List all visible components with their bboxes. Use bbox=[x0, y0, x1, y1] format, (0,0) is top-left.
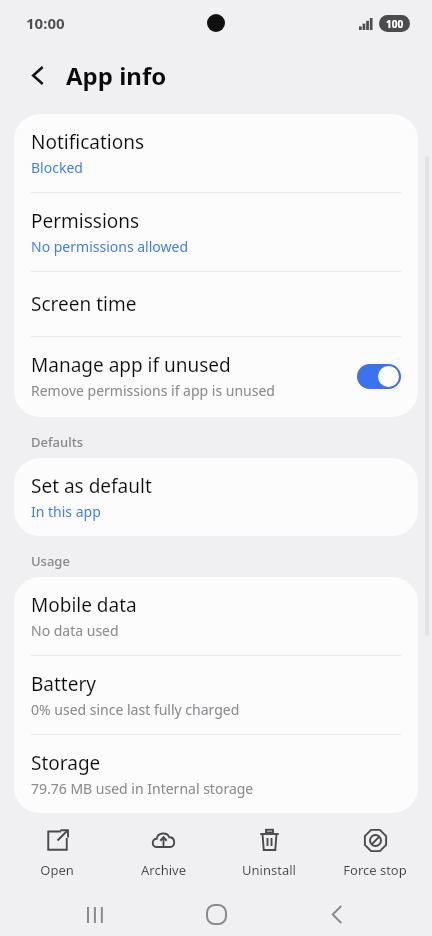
button[interactable]: Manage app if unused bbox=[14, 337, 418, 417]
staticText: Manage app if unused bbox=[31, 352, 231, 378]
staticText: Defaults bbox=[31, 433, 84, 451]
staticText: No data used bbox=[31, 621, 119, 640]
staticText: No permissions allowed bbox=[31, 237, 189, 256]
staticText: Permissions bbox=[31, 208, 140, 234]
staticText: Storage bbox=[31, 750, 101, 776]
staticText: Archive bbox=[141, 861, 186, 879]
button[interactable]: Archive bbox=[114, 824, 212, 883]
staticText: Screen time bbox=[31, 291, 137, 317]
button[interactable]: Back bbox=[20, 57, 56, 93]
staticText: Uninstall bbox=[242, 861, 296, 879]
button[interactable]: Open bbox=[8, 824, 106, 883]
button[interactable]: Permissions bbox=[14, 193, 418, 271]
staticText: Remove permissions if app is unused bbox=[31, 381, 275, 400]
staticText: 10:00 bbox=[26, 13, 65, 33]
button[interactable]: Battery bbox=[14, 656, 418, 734]
staticText: Notifications bbox=[31, 129, 145, 155]
staticText: 100 bbox=[386, 17, 404, 31]
staticText: Open bbox=[40, 861, 74, 879]
button[interactable]: Screen time bbox=[14, 272, 418, 336]
staticText: Battery bbox=[31, 671, 96, 697]
staticText: Mobile data bbox=[31, 592, 137, 618]
staticText: 79.76 MB used in Internal storage bbox=[31, 779, 254, 798]
button[interactable]: Manage app if unused bbox=[357, 364, 401, 389]
button[interactable]: Recent apps bbox=[71, 893, 121, 936]
button[interactable]: Notifications bbox=[14, 114, 418, 192]
staticText: Set as default bbox=[31, 473, 152, 499]
button[interactable]: Force stop bbox=[326, 824, 424, 883]
button[interactable]: Uninstall bbox=[220, 824, 318, 883]
staticText: Usage bbox=[31, 552, 70, 570]
button[interactable]: Back bbox=[312, 893, 362, 936]
button[interactable]: Storage bbox=[14, 735, 418, 813]
staticText: Blocked bbox=[31, 158, 83, 177]
staticText: In this app bbox=[31, 502, 101, 521]
button[interactable]: Set as default bbox=[14, 458, 418, 536]
staticText: App info bbox=[66, 59, 167, 92]
button[interactable]: Home bbox=[191, 893, 241, 936]
staticText: 0% used since last fully charged bbox=[31, 700, 240, 719]
staticText: Force stop bbox=[343, 861, 407, 879]
button[interactable]: Mobile data bbox=[14, 577, 418, 655]
